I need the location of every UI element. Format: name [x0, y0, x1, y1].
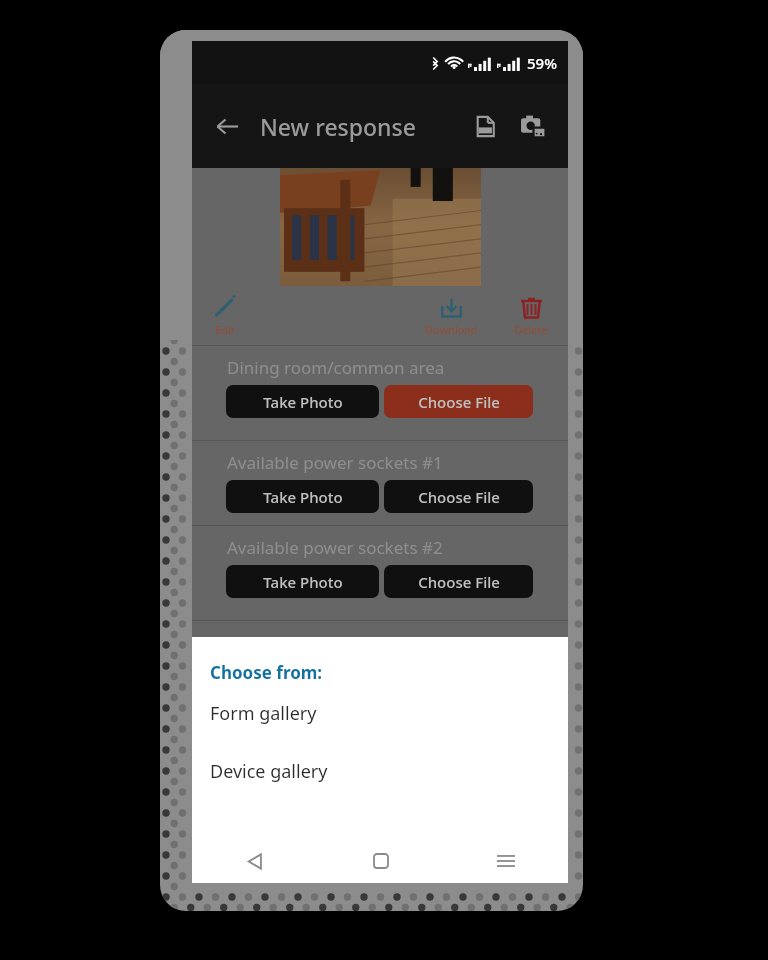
- staticText: Available power sockets #1: [227, 451, 443, 474]
- staticText: Take Photo: [263, 572, 343, 592]
- staticText: Delete: [514, 322, 548, 337]
- staticText: Download: [425, 322, 478, 337]
- staticText: Device gallery: [210, 759, 328, 784]
- button[interactable]: Edit: [208, 292, 242, 339]
- button[interactable]: Export PDF: [463, 104, 507, 148]
- button[interactable]: Delete: [510, 293, 552, 339]
- staticText: New response: [260, 111, 416, 142]
- button[interactable]: Choose File: [384, 565, 533, 598]
- staticText: Choose File: [418, 487, 500, 507]
- staticText: Choose File: [418, 392, 500, 412]
- button[interactable]: Back: [192, 839, 318, 883]
- button[interactable]: Camera: [511, 104, 555, 148]
- staticText: Form gallery: [210, 701, 317, 726]
- button[interactable]: Home: [318, 839, 443, 883]
- staticText: 59%: [527, 53, 557, 73]
- staticText: Available power sockets #2: [227, 536, 443, 559]
- button[interactable]: Back: [205, 104, 249, 148]
- button[interactable]: Take Photo: [226, 480, 379, 513]
- button[interactable]: Take Photo: [226, 385, 379, 418]
- button[interactable]: Form gallery: [192, 684, 568, 742]
- staticText: Choose from:: [210, 661, 323, 684]
- button[interactable]: Device gallery: [192, 742, 568, 800]
- staticText: Take Photo: [263, 487, 343, 507]
- button[interactable]: Recent apps: [443, 839, 568, 883]
- staticText: Edit: [215, 322, 235, 337]
- button[interactable]: Choose File: [384, 385, 533, 418]
- staticText: Choose File: [418, 572, 500, 592]
- button[interactable]: Download: [421, 293, 482, 339]
- button[interactable]: Choose File: [384, 480, 533, 513]
- staticText: Dining room/common area: [227, 356, 445, 379]
- button[interactable]: Take Photo: [226, 565, 379, 598]
- staticText: Take Photo: [263, 392, 343, 412]
